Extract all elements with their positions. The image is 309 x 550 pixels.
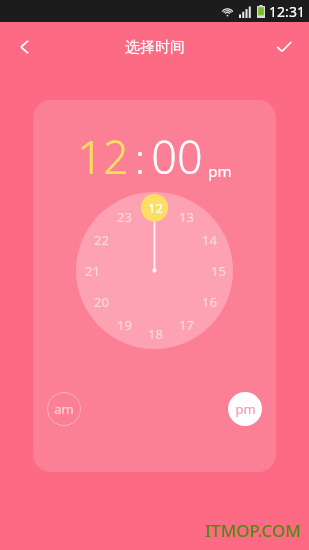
staticText: 15: [211, 262, 226, 280]
staticText: 21: [85, 262, 100, 280]
staticText: 12: [148, 199, 163, 217]
staticText: :: [135, 131, 145, 185]
button[interactable]: 22: [88, 227, 114, 253]
staticText: ITMOP.COM: [205, 519, 301, 542]
button[interactable]: 17: [173, 312, 199, 338]
button[interactable]: 12: [77, 126, 129, 187]
button[interactable]: 20: [88, 289, 114, 315]
staticText: am: [54, 400, 74, 418]
button[interactable]: 12: [142, 195, 168, 221]
button[interactable]: Back: [0, 22, 50, 72]
staticText: 00: [151, 126, 203, 187]
button[interactable]: am: [47, 392, 81, 426]
button[interactable]: 18: [142, 321, 168, 347]
button[interactable]: 21: [79, 258, 105, 284]
staticText: 20: [94, 293, 109, 311]
button[interactable]: 16: [196, 289, 222, 315]
staticText: 16: [202, 293, 217, 311]
staticText: 18: [148, 325, 163, 343]
staticText: pm: [208, 161, 232, 181]
button[interactable]: pm: [228, 392, 262, 426]
button[interactable]: 15: [205, 258, 231, 284]
staticText: 13: [179, 208, 194, 226]
button[interactable]: 14: [196, 227, 222, 253]
staticText: 23: [117, 208, 132, 226]
staticText: 17: [179, 316, 194, 334]
button[interactable]: 23: [111, 204, 137, 230]
button[interactable]: 13: [173, 204, 199, 230]
button[interactable]: 19: [111, 312, 137, 338]
button[interactable]: Confirm: [259, 22, 309, 72]
staticText: 14: [202, 231, 217, 249]
staticText: 选择时间: [125, 38, 185, 57]
staticText: 22: [94, 231, 109, 249]
staticText: 12: [77, 126, 129, 187]
button[interactable]: 00: [151, 126, 203, 187]
staticText: 12:31: [269, 2, 305, 21]
staticText: 19: [117, 316, 132, 334]
staticText: pm: [235, 400, 256, 418]
